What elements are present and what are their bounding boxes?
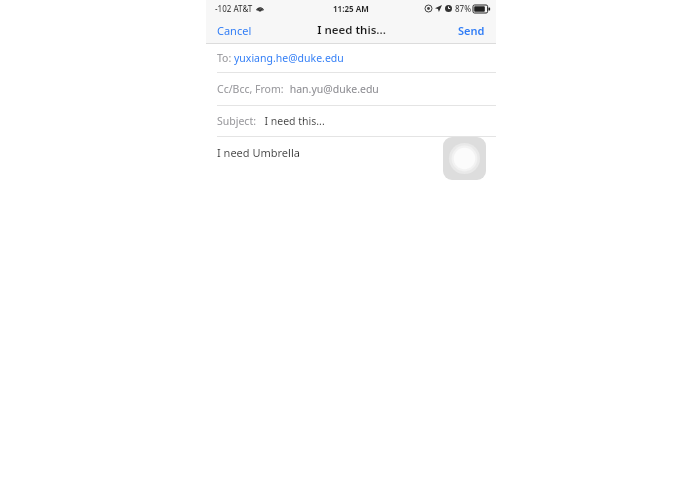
staticText: 87% — [455, 3, 471, 14]
staticText: Cc/Bcc, From: — [217, 82, 287, 96]
staticText: I need this... — [259, 114, 325, 128]
staticText: yuxiang.he@duke.edu — [234, 51, 344, 65]
button[interactable]: Attachment loading — [443, 137, 486, 180]
staticText: -102 AT&T — [215, 3, 253, 14]
staticText: han.yu@duke.edu — [287, 82, 379, 96]
staticText: Cancel — [217, 23, 252, 38]
button[interactable]: Send — [447, 18, 496, 43]
staticText: 11:25 AM — [333, 3, 369, 14]
button[interactable]: To: — [206, 44, 496, 72]
button[interactable]: Cancel — [206, 18, 263, 43]
button[interactable]: Cc/Bcc, From: — [206, 73, 496, 105]
staticText: Subject: — [217, 114, 259, 128]
staticText: To: — [217, 51, 234, 65]
staticText: Send — [458, 23, 485, 38]
staticText: I need Umbrella — [217, 145, 300, 160]
staticText: I need this... — [317, 22, 386, 38]
button[interactable]: Subject: — [206, 106, 496, 136]
